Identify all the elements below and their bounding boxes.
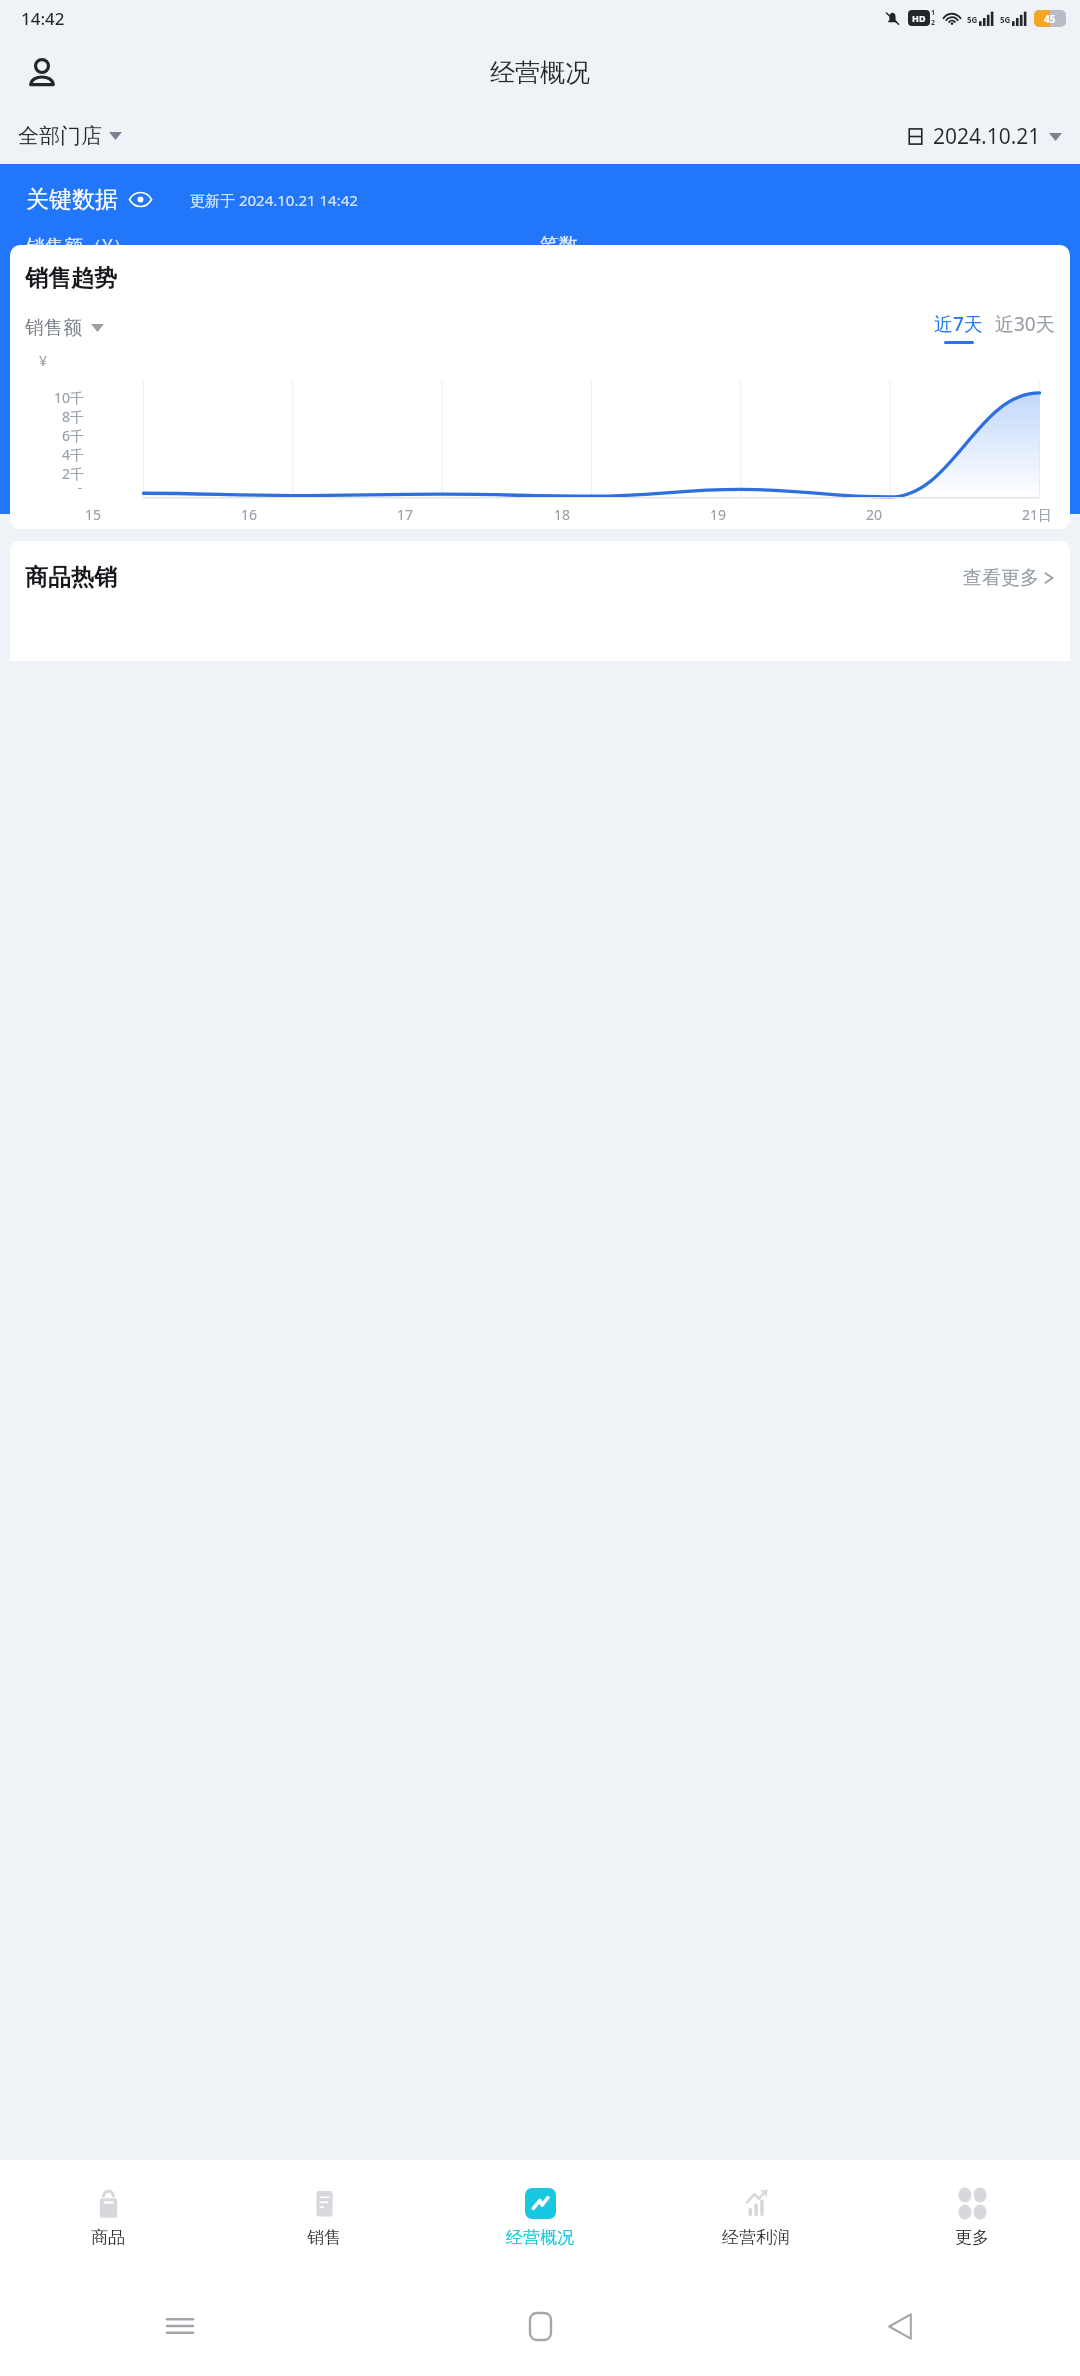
button[interactable]: 销售额（¥）	[26, 233, 540, 327]
button[interactable]: Recent apps	[0, 2276, 360, 2376]
staticText: 8,352.58	[26, 388, 138, 426]
button[interactable]: 经营利润	[648, 2160, 864, 2276]
staticText: 经营概况	[490, 57, 590, 88]
staticText: 销售趋势	[25, 264, 117, 293]
button[interactable]: Home	[360, 2276, 720, 2376]
staticText: 昨日 56.55	[26, 434, 99, 454]
button[interactable]: 笔数	[540, 233, 1054, 327]
staticText: 更多	[955, 2227, 989, 2248]
button[interactable]: 销售	[216, 2160, 432, 2276]
staticText: 14:42	[21, 7, 65, 30]
button[interactable]: 近30天	[995, 311, 1055, 344]
button[interactable]: 更多	[864, 2160, 1080, 2276]
staticText: 商品热销	[25, 563, 117, 592]
button[interactable]: 全部门店	[18, 117, 122, 155]
staticText: 21日	[1022, 505, 1053, 524]
staticText: 10千	[54, 388, 85, 407]
staticText: 近7天	[934, 311, 983, 337]
button[interactable]: 商品	[0, 2160, 216, 2276]
staticText: 1	[931, 8, 936, 18]
staticText: ¥	[39, 351, 48, 370]
staticText: 商品	[91, 2227, 125, 2248]
staticText: 2024.10.21	[933, 122, 1041, 151]
button[interactable]: Profile	[14, 44, 70, 100]
staticText: 毛利（¥）	[26, 353, 113, 379]
staticText: 8,998.90	[26, 268, 138, 306]
staticText: 5G	[967, 14, 978, 25]
staticText: 0	[76, 483, 85, 489]
staticText: 经营概况	[506, 2227, 574, 2248]
staticText: 昨日 155.00	[26, 314, 107, 327]
button[interactable]: 关键数据	[26, 185, 152, 214]
button[interactable]: 毛利（¥）	[26, 353, 540, 454]
button[interactable]: 近7天	[934, 311, 983, 344]
button[interactable]: 资金收入（¥）	[540, 353, 1054, 454]
staticText: 19	[710, 505, 727, 524]
button[interactable]: 销售额	[25, 316, 104, 340]
staticText: HD	[912, 12, 926, 24]
staticText: 5G	[1000, 14, 1011, 25]
staticText: 销售额	[25, 316, 82, 340]
button[interactable]: Back	[720, 2276, 1080, 2376]
staticText: 17	[397, 505, 414, 524]
staticText: 更新于 2024.10.21 14:42	[190, 190, 358, 210]
staticText: 经营利润	[722, 2227, 790, 2248]
staticText: 近30天	[995, 311, 1055, 337]
staticText: 销售额（¥）	[26, 233, 132, 259]
staticText: 20	[866, 505, 883, 524]
staticText: 关键数据	[26, 185, 118, 214]
staticText: 全部门店	[18, 123, 102, 149]
staticText: 2千	[62, 464, 85, 483]
staticText: 2	[931, 18, 936, 28]
staticText: 4千	[62, 445, 85, 464]
staticText: 18	[554, 505, 571, 524]
staticText: 查看更多	[963, 566, 1039, 590]
staticText: 15	[85, 505, 102, 524]
button[interactable]: 2024.10.21	[906, 116, 1062, 157]
staticText: 45	[1044, 12, 1056, 26]
button[interactable]: 查看更多	[963, 566, 1055, 590]
button[interactable]: 经营概况	[432, 2160, 648, 2276]
staticText: 销售	[307, 2227, 341, 2248]
staticText: 16	[241, 505, 258, 524]
staticText: 笔数	[540, 233, 578, 257]
staticText: 6千	[62, 426, 85, 445]
staticText: 8千	[62, 407, 85, 426]
